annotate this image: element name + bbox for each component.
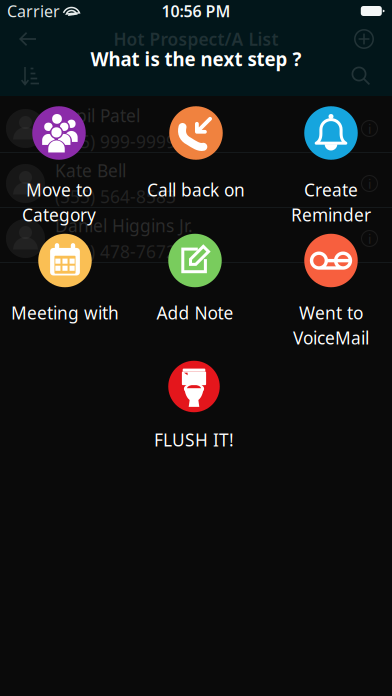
staticText: (555) 478-7672 [55,240,176,263]
button[interactable]: Meeting with [0,234,133,320]
button[interactable]: Back [8,22,48,55]
staticText: Carrier [7,0,60,22]
staticText: Call back on [147,178,245,201]
button[interactable]: Call back on [128,106,264,197]
staticText: What is the next step ? [90,47,301,71]
staticText: 10:56 PM [161,0,230,22]
button[interactable]: Add Note [127,234,263,320]
staticText: Kapil Patel [55,104,140,127]
staticText: VoiceMail [293,326,369,349]
staticText: (555) 564-8583 [55,185,176,208]
staticText: Reminder [291,203,371,226]
button[interactable]: Sort [13,60,48,91]
staticText: Went to [299,301,363,324]
staticText: i [368,175,371,192]
staticText: Hot Prospect/A List [113,27,278,50]
button[interactable]: FLUSH IT! [126,361,262,447]
staticText: Move to [26,178,92,201]
staticText: Add Note [156,301,233,324]
button[interactable]: Kapil Patel [0,101,392,156]
staticText: i [368,120,371,137]
button[interactable]: Move to [0,106,127,216]
staticText: (555) 999-9999 [55,130,176,153]
button[interactable]: Create [263,106,392,216]
button[interactable]: Daniel Higgins Jr. [0,211,392,266]
button[interactable]: Kate Bell [0,156,392,211]
staticText: Create [304,178,358,201]
staticText: i [368,230,371,247]
staticText: Daniel Higgins Jr. [55,214,193,237]
button[interactable]: Search [343,60,379,92]
button[interactable]: Add contact [344,22,384,56]
staticText: Category [22,203,96,226]
staticText: FLUSH IT! [154,428,234,451]
staticText: Meeting with [11,301,119,324]
staticText: Kate Bell [55,159,126,182]
button[interactable]: Went to [263,234,392,339]
